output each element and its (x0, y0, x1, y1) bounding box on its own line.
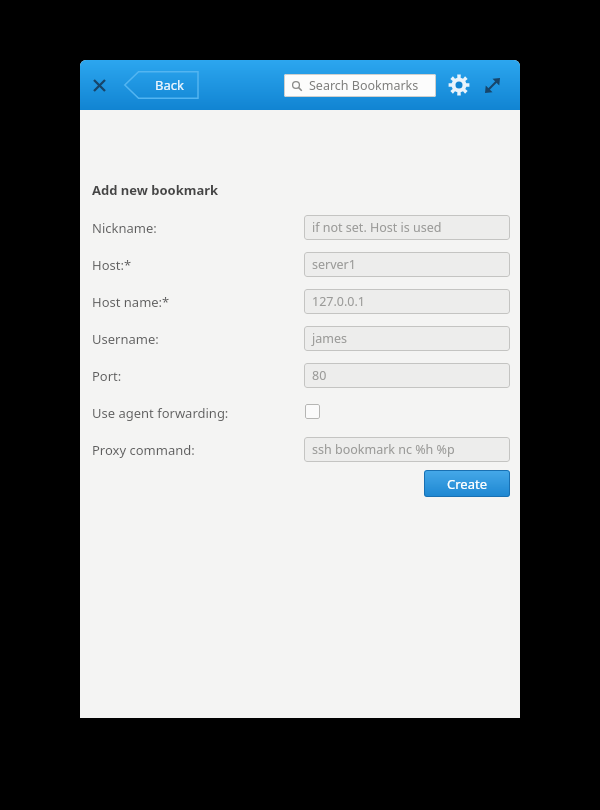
button[interactable]: if not set. Host is used (304, 215, 510, 240)
staticText: Search Bookmarks (309, 77, 419, 94)
button[interactable]: 80 (304, 363, 510, 388)
staticText: server1 (312, 256, 356, 273)
staticText: Use agent forwarding: (92, 404, 229, 422)
staticText: if not set. Host is used (312, 219, 442, 236)
staticText: Host:* (92, 256, 132, 274)
button[interactable]: Settings (444, 70, 474, 100)
staticText: Create (447, 475, 487, 493)
staticText: Back (155, 76, 184, 94)
staticText: Add new bookmark (92, 181, 219, 199)
staticText: Host name:* (92, 293, 170, 311)
staticText: 80 (312, 367, 327, 384)
button[interactable]: Close (85, 71, 113, 99)
button[interactable]: Use agent forwarding (303, 402, 321, 420)
button[interactable]: Back (124, 71, 200, 99)
button[interactable]: Expand (478, 71, 506, 99)
button[interactable]: Create (424, 470, 510, 497)
staticText: Port: (92, 367, 122, 385)
button[interactable]: server1 (304, 252, 510, 277)
button[interactable]: Search Bookmarks (284, 74, 436, 97)
staticText: Proxy command: (92, 441, 195, 459)
staticText: Username: (92, 330, 159, 348)
staticText: Nickname: (92, 219, 157, 237)
staticText: ssh bookmark nc %h %p (312, 441, 455, 458)
button[interactable]: 127.0.0.1 (304, 289, 510, 314)
button[interactable]: ssh bookmark nc %h %p (304, 437, 510, 462)
staticText: 127.0.0.1 (312, 293, 365, 310)
button[interactable]: james (304, 326, 510, 351)
staticText: james (312, 330, 347, 347)
